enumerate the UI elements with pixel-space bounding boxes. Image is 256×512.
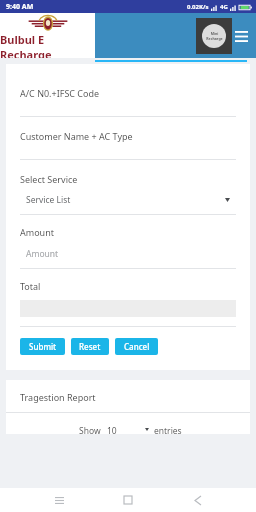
button[interactable]: Menu [232,27,250,45]
staticText: Reset [79,341,101,352]
staticText: Cancel [124,341,150,352]
button[interactable]: Cancel [115,338,158,355]
button[interactable]: Submit [20,338,65,355]
button[interactable]: A/C N0.+IFSC Code [6,74,250,117]
button[interactable]: Bulbul E Recharge [0,13,95,58]
staticText: Amount [20,226,54,238]
staticText: Select Service [20,173,78,185]
button[interactable]: Service List [26,194,230,206]
button[interactable]: 10 [107,425,149,434]
staticText: Submit [29,341,57,352]
staticText: 4G [220,3,228,11]
staticText: Amount [26,248,59,260]
staticText: Show [79,425,101,434]
staticText: Customer Name + AC Type [20,130,133,142]
staticText: Service List [26,194,71,206]
staticText: 0.02K/s [187,3,209,11]
button[interactable]: Amount [26,248,250,260]
staticText: Tragestion Report [20,391,96,403]
button[interactable]: Customer Name + AC Type [6,117,250,160]
staticText: 10 [107,425,117,434]
button[interactable]: Profile [196,18,232,54]
button[interactable]: Home [117,489,139,511]
staticText: A/C N0.+IFSC Code [20,87,100,99]
button[interactable]: Reset [71,338,109,355]
staticText: Mini Recharge [206,31,223,41]
staticText: Bulbul E Recharge [0,32,95,58]
staticText: 9:40 AM [6,2,34,12]
button[interactable]: Back [187,489,209,511]
button[interactable]: Recents [48,489,70,511]
staticText: Total [20,280,41,292]
staticText: entries [154,425,182,434]
